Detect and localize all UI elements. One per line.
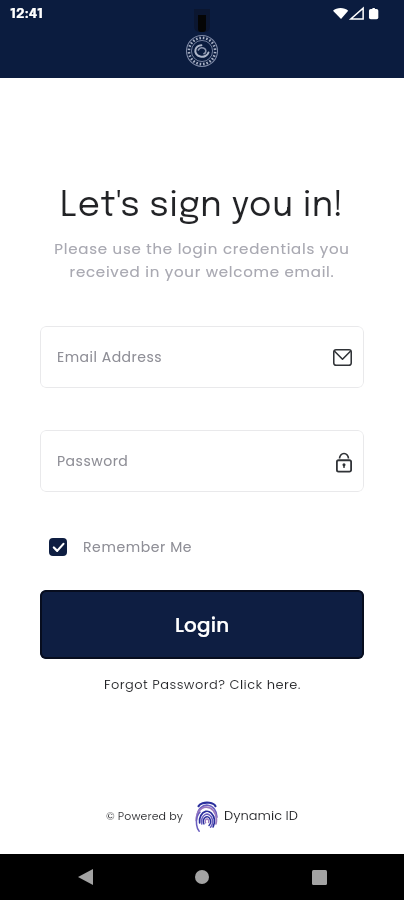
staticText: Email Address	[57, 347, 163, 367]
staticText: 12:41	[10, 7, 44, 21]
button[interactable]: Remember Me	[49, 537, 193, 557]
button[interactable]: Email Address	[40, 326, 364, 388]
button[interactable]: Forgot Password? Click here.	[0, 675, 404, 693]
staticText: Remember Me	[83, 537, 193, 557]
button[interactable]: Login	[40, 590, 364, 659]
staticText: Let's sign you in!	[0, 188, 404, 224]
staticText: Login	[175, 611, 230, 639]
other: Email	[333, 349, 352, 366]
staticText: © Powered by	[106, 808, 184, 823]
staticText: Forgot Password? Click here.	[104, 675, 301, 693]
button[interactable]: Back	[65, 857, 105, 897]
staticText: Dynamic ID	[224, 806, 298, 824]
other: Password	[336, 451, 352, 472]
staticText: Please use the login credentials you rec…	[0, 238, 404, 282]
staticText: Password	[57, 451, 129, 471]
button[interactable]: Home	[182, 857, 222, 897]
button[interactable]: Password	[40, 430, 364, 492]
button[interactable]: Recent apps	[299, 857, 339, 897]
